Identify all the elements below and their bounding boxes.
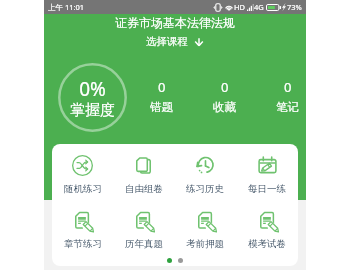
staticText: 历年真题 [125, 238, 163, 250]
button[interactable]: 章节练习 [52, 199, 113, 253]
staticText: 4G [254, 2, 264, 12]
button[interactable]: 自由组卷 [113, 144, 174, 199]
button[interactable]: 选择课程 [44, 35, 306, 48]
button[interactable]: 历年真题 [113, 199, 174, 253]
staticText: 考前押题 [186, 238, 224, 250]
staticText: 选择课程 [146, 35, 188, 48]
button[interactable]: 每日一练 [236, 144, 298, 199]
button[interactable]: 随机练习 [52, 144, 113, 199]
staticText: 模考试卷 [248, 238, 286, 250]
staticText: 每日一练 [248, 183, 286, 195]
other: 选择课程 [194, 37, 204, 47]
staticText: 章节练习 [64, 238, 102, 250]
staticText: 上午 11:01 [48, 2, 85, 12]
button[interactable]: 0 [198, 78, 250, 114]
staticText: 自由组卷 [125, 183, 163, 195]
staticText: 收藏 [213, 100, 236, 114]
button[interactable]: 模考试卷 [236, 199, 298, 253]
staticText: 错题 [150, 100, 173, 114]
staticText: 掌握度 [58, 101, 127, 120]
staticText: 0 [221, 78, 229, 96]
staticText: HD [234, 2, 246, 12]
staticText: 练习历史 [186, 183, 224, 195]
button[interactable]: 0% [58, 63, 127, 132]
staticText: 73% [287, 2, 302, 12]
button[interactable]: 0 [261, 78, 313, 114]
staticText: 0 [158, 78, 166, 96]
staticText: 笔记 [276, 100, 299, 114]
staticText: 0% [58, 76, 127, 102]
staticText: 证券市场基本法律法规 [44, 15, 306, 30]
button[interactable]: 0 [135, 78, 187, 114]
button[interactable]: 练习历史 [174, 144, 236, 199]
staticText: 0 [284, 78, 292, 96]
staticText: 随机练习 [64, 183, 102, 195]
button[interactable]: 考前押题 [174, 199, 236, 253]
